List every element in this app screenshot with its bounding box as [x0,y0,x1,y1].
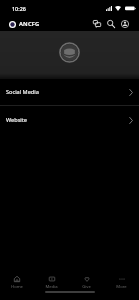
staticText: 10:26 [12,5,26,12]
staticText: Give [82,284,91,290]
button[interactable]: Home [0,266,34,300]
button[interactable]: Give [69,266,104,300]
staticText: Home [11,284,23,290]
staticText: ANCFG [19,20,40,28]
button[interactable]: Messages [90,17,104,31]
button[interactable]: More [104,266,139,300]
button[interactable]: Social Media [0,79,139,105]
button[interactable]: Website [0,106,139,134]
button[interactable]: Search [104,17,118,31]
staticText: Media [45,284,58,290]
staticText: More [116,284,127,290]
staticText: Website [6,116,27,124]
button[interactable]: Media [34,266,69,300]
button[interactable]: Account [118,17,132,31]
staticText: Social Media [6,88,39,96]
